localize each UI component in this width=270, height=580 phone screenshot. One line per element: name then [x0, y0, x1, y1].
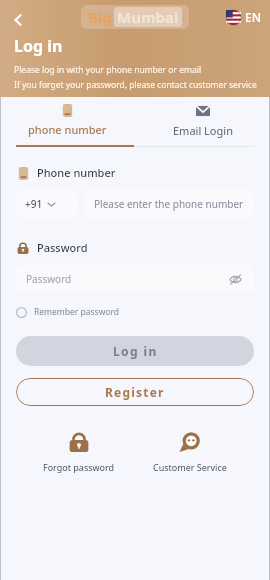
button[interactable]: Customer Service	[143, 428, 237, 475]
button[interactable]: Please enter the phone number	[84, 190, 254, 218]
staticText: Email Login	[173, 123, 233, 138]
staticText: Register	[105, 384, 165, 400]
staticText: Remember password	[34, 306, 120, 318]
staticText: Mumbai	[117, 7, 179, 27]
button[interactable]: phone number	[0, 97, 135, 137]
staticText: +91	[25, 197, 43, 211]
staticText: If you forget your password, please cont…	[14, 79, 257, 91]
staticText: Big	[88, 7, 112, 27]
staticText: Phone number	[37, 165, 116, 180]
staticText: Password	[26, 272, 72, 286]
staticText: Customer Service	[153, 461, 227, 473]
button[interactable]: Email Login	[135, 97, 270, 138]
button[interactable]: Log in	[16, 336, 254, 366]
button[interactable]: Password	[16, 265, 254, 293]
staticText: phone number	[28, 122, 107, 137]
button[interactable]: Back	[4, 6, 32, 34]
button[interactable]: Forgot password	[33, 428, 125, 475]
staticText: Please enter the phone number	[94, 197, 244, 211]
staticText: Please log in with your phone number or …	[14, 64, 202, 76]
button[interactable]: Remember password	[16, 306, 120, 318]
button[interactable]: +91	[16, 190, 78, 218]
staticText: Log in	[113, 343, 158, 359]
button[interactable]: Register	[16, 378, 254, 406]
button[interactable]: EN	[223, 6, 264, 28]
staticText: EN	[245, 9, 261, 25]
staticText: Forgot password	[43, 461, 115, 473]
staticText: Password	[37, 240, 88, 255]
button[interactable]: Show password	[226, 270, 244, 288]
staticText: Log in	[14, 35, 63, 57]
